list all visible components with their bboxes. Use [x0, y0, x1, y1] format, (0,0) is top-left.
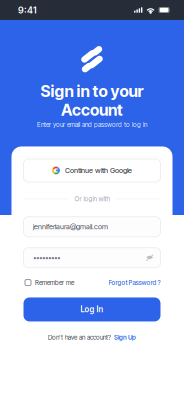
staticText: Log In [80, 305, 103, 314]
staticText: Remember me [35, 279, 74, 286]
staticText: ••••••••• [33, 253, 60, 262]
staticText: Account [61, 100, 123, 120]
button[interactable]: Remember me [25, 279, 74, 286]
button[interactable]: Forgot Password ? [108, 279, 160, 286]
button[interactable]: Log In [23, 297, 160, 321]
staticText: Forgot Password ? [108, 279, 160, 286]
staticText: jenniferlaura@gmail.com [33, 222, 108, 231]
staticText: Or login with [74, 195, 109, 203]
staticText: Don't have an account? [48, 333, 111, 341]
staticText: Continue with Google [65, 166, 132, 175]
staticText: 9:41 [18, 4, 37, 16]
staticText: Sign Up [114, 333, 136, 341]
staticText: Enter your email and password to log in [37, 121, 147, 128]
button[interactable]: Sign Up [114, 333, 136, 341]
button[interactable]: Continue with Google [23, 159, 160, 182]
staticText: Sign in to your [40, 81, 143, 101]
